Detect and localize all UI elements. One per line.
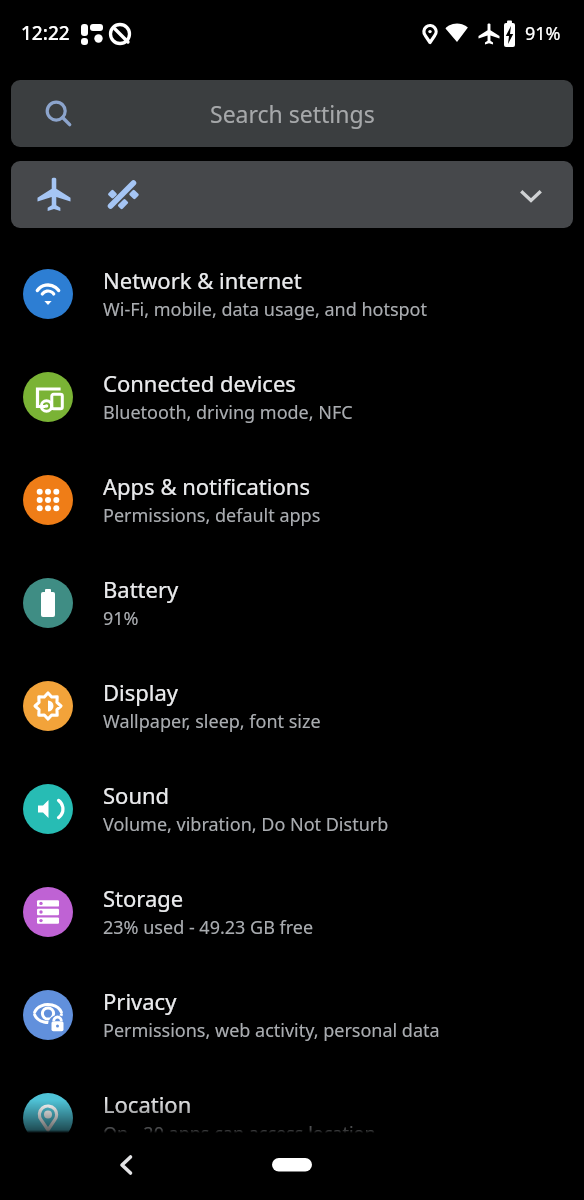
button[interactable]: Location: [0, 1066, 584, 1169]
button[interactable]: Display: [0, 654, 584, 757]
staticText: Apps & notifications: [103, 471, 310, 501]
button[interactable]: [11, 161, 573, 228]
staticText: On - 20 apps can access location: [103, 1121, 376, 1146]
staticText: Storage: [103, 883, 184, 913]
staticText: Battery: [103, 574, 179, 604]
button[interactable]: Network & internet: [0, 242, 584, 345]
staticText: Wi-Fi, mobile, data usage, and hotspot: [103, 297, 427, 322]
staticText: 23% used - 49.23 GB free: [103, 915, 314, 940]
button[interactable]: Search settings: [11, 80, 573, 147]
button[interactable]: Storage: [0, 860, 584, 963]
button[interactable]: Privacy: [0, 963, 584, 1066]
staticText: Volume, vibration, Do Not Disturb: [103, 812, 389, 837]
button[interactable]: Connected devices: [0, 345, 584, 448]
button[interactable]: Apps & notifications: [0, 448, 584, 551]
button[interactable]: [100, 1141, 152, 1193]
staticText: Permissions, default apps: [103, 503, 321, 528]
staticText: Location: [103, 1089, 192, 1119]
staticText: 91%: [103, 606, 139, 631]
staticText: 12:22: [21, 20, 70, 46]
staticText: Connected devices: [103, 368, 296, 398]
staticText: Wallpaper, sleep, font size: [103, 709, 321, 734]
staticText: Network & internet: [103, 265, 302, 295]
staticText: Search settings: [210, 98, 375, 129]
button[interactable]: Battery: [0, 551, 584, 654]
staticText: Bluetooth, driving mode, NFC: [103, 400, 353, 425]
staticText: Privacy: [103, 986, 177, 1016]
button[interactable]: Sound: [0, 757, 584, 860]
button[interactable]: [262, 1152, 322, 1182]
staticText: Display: [103, 677, 179, 707]
staticText: 91%: [525, 21, 561, 46]
staticText: Sound: [103, 780, 170, 810]
staticText: Permissions, web activity, personal data: [103, 1018, 440, 1043]
